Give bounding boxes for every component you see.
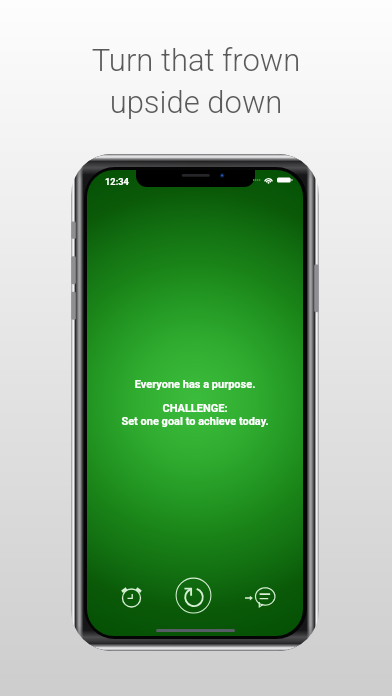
button[interactable]: Share message [239, 576, 283, 620]
staticText: CHALLENGE: Set one goal to achieve today… [87, 402, 303, 427]
staticText: 12:34 [105, 176, 129, 187]
staticText: Everyone has a purpose. [87, 378, 303, 391]
button[interactable]: Alarm [113, 579, 150, 616]
staticText: Turn that frown upside down [0, 42, 392, 121]
button[interactable]: New quote [173, 575, 214, 616]
